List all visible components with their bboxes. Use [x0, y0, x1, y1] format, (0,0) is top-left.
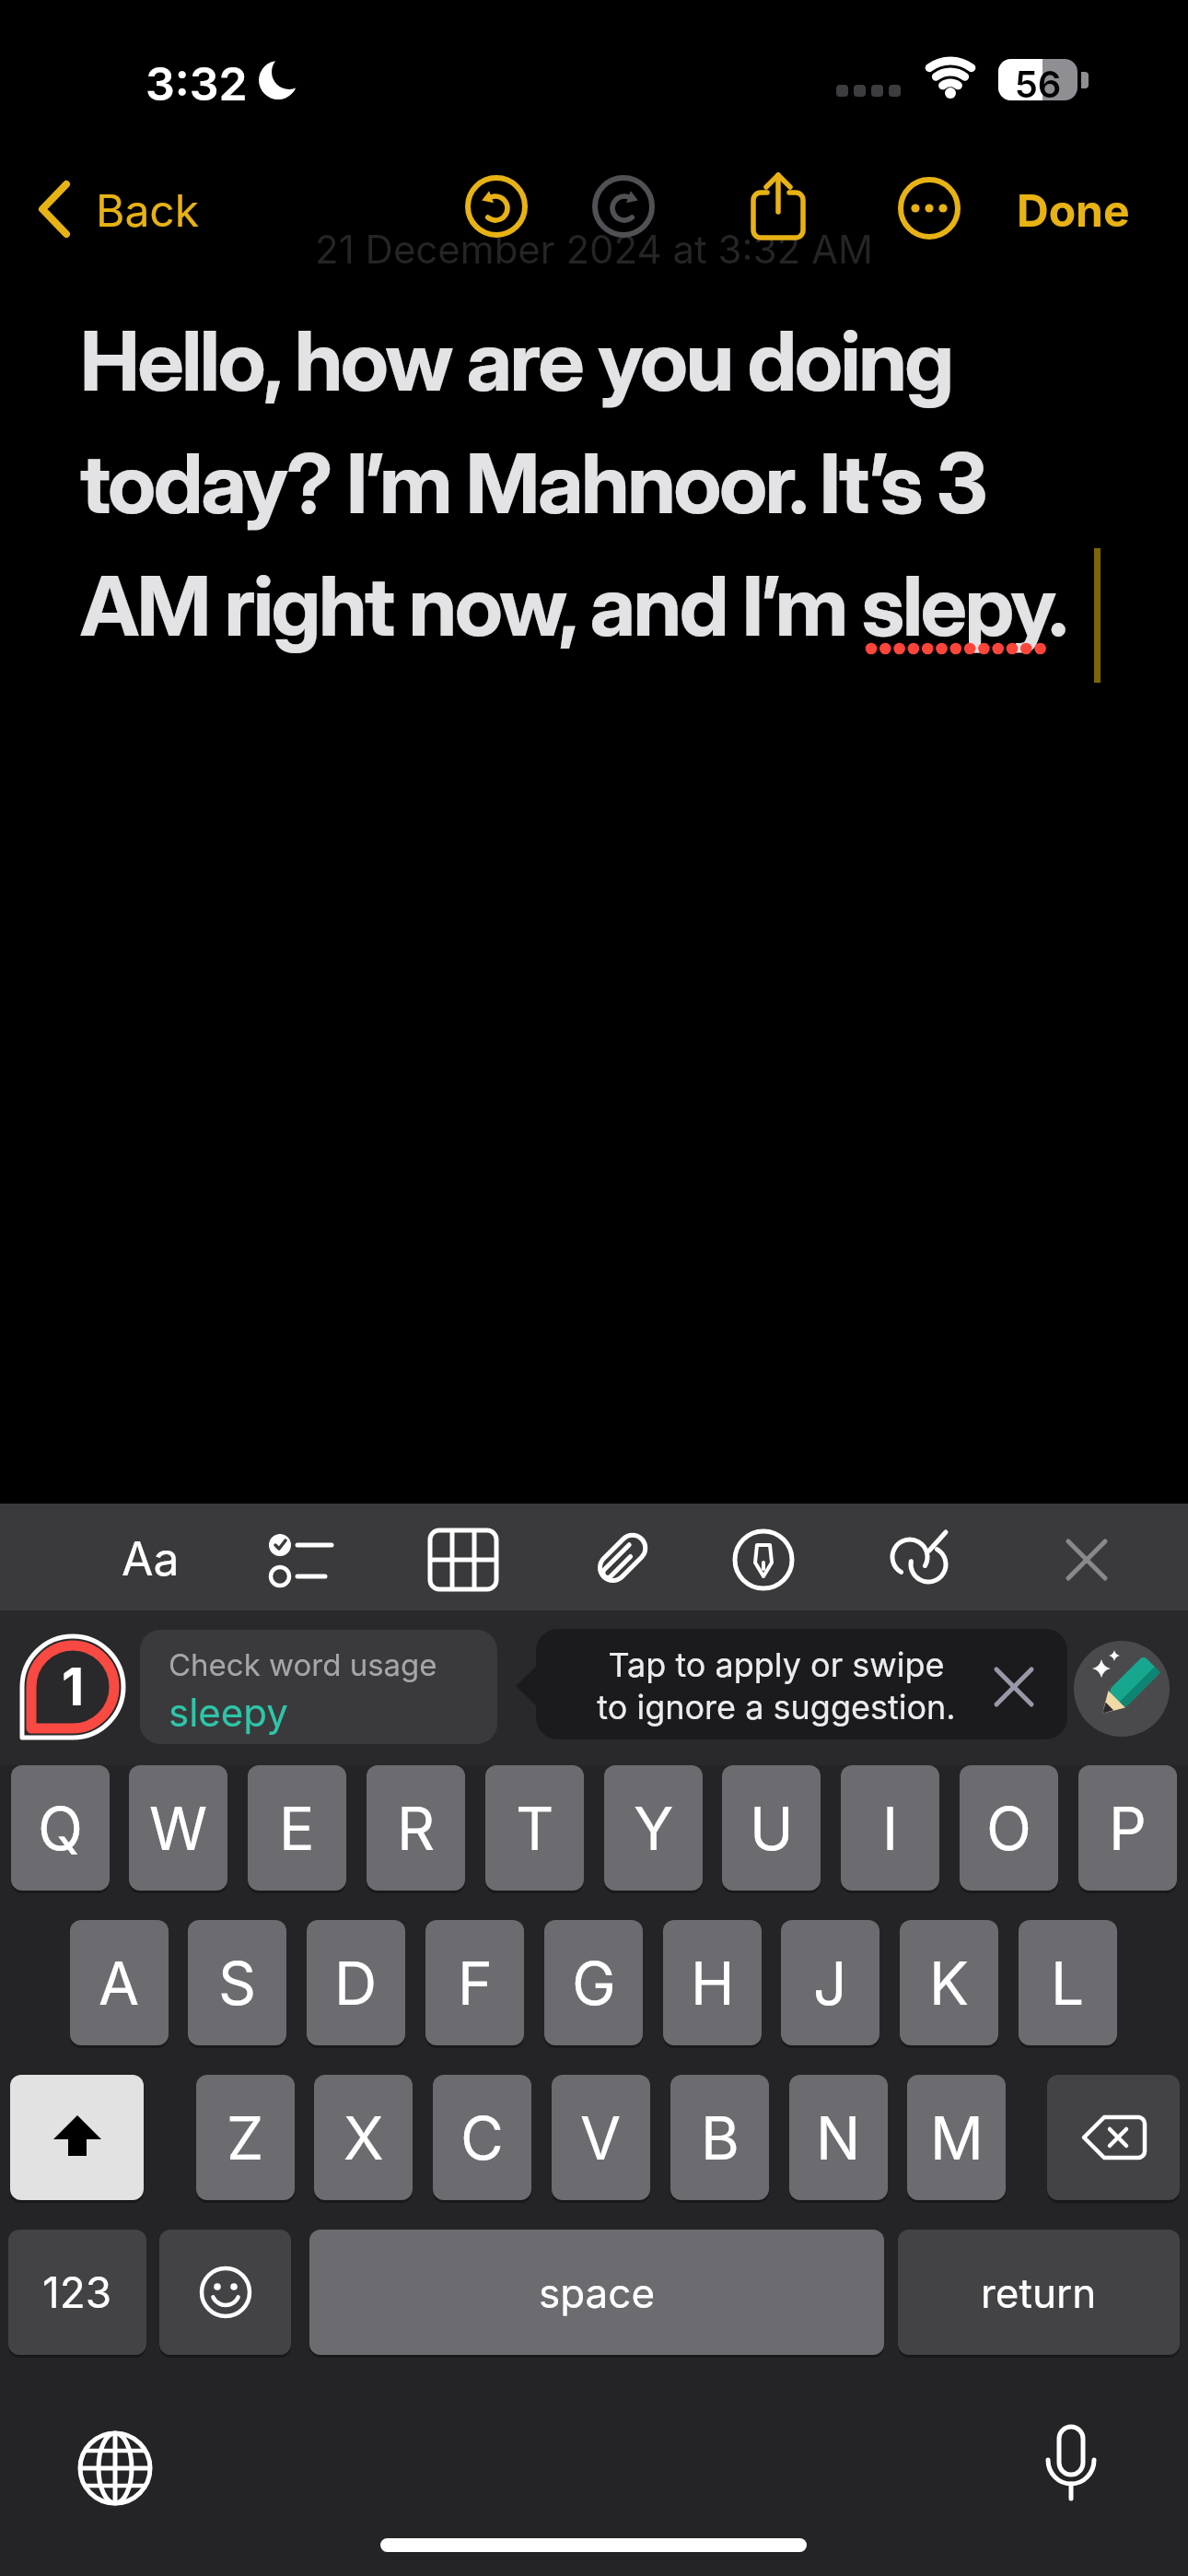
staticText: E — [279, 1793, 315, 1864]
staticText: L — [1051, 1948, 1085, 2019]
staticText: P — [1109, 1793, 1147, 1864]
staticText: Z — [227, 2102, 264, 2173]
button[interactable] — [584, 1523, 658, 1597]
staticText: N — [816, 2102, 861, 2173]
button[interactable]: 1 — [15, 1629, 131, 1745]
staticText: I — [882, 1793, 899, 1864]
staticText: V — [580, 2102, 622, 2173]
staticText: G — [572, 1948, 616, 2019]
button[interactable] — [1061, 1534, 1112, 1586]
staticText: T — [516, 1793, 554, 1864]
button[interactable]: M — [907, 2075, 1006, 2200]
staticText: R — [397, 1793, 436, 1864]
staticText: 56 — [998, 62, 1077, 2576]
button[interactable]: W — [129, 1765, 227, 1891]
button[interactable]: T — [485, 1765, 584, 1891]
button[interactable] — [748, 170, 809, 243]
button[interactable] — [10, 2075, 144, 2200]
button[interactable]: X — [314, 2075, 413, 2200]
button[interactable] — [28, 175, 212, 240]
button[interactable]: E — [248, 1765, 346, 1891]
staticText: S — [218, 1948, 257, 2019]
button[interactable]: G — [544, 1920, 643, 2045]
button[interactable]: B — [670, 2075, 769, 2200]
staticText: Aa — [122, 1531, 180, 1587]
button[interactable] — [897, 176, 961, 240]
button[interactable]: Done — [1008, 175, 1142, 240]
button[interactable]: L — [1019, 1920, 1117, 2045]
staticText: 21 December 2024 at 3:32 AM — [0, 226, 1188, 2576]
button[interactable]: V — [552, 2075, 650, 2200]
staticText: Done — [1017, 183, 1130, 237]
staticText: F — [458, 1948, 493, 2019]
button[interactable]: I — [841, 1765, 939, 1891]
staticText: A — [99, 1948, 140, 2019]
button[interactable]: C — [433, 2075, 531, 2200]
staticText: D — [334, 1948, 378, 2019]
button[interactable] — [1047, 2075, 1180, 2200]
button[interactable]: return — [898, 2230, 1180, 2355]
button[interactable]: Aa — [99, 1520, 201, 1598]
staticText: J — [813, 1948, 847, 2019]
button[interactable] — [1074, 1641, 1170, 1737]
button[interactable]: O — [960, 1765, 1058, 1891]
staticText: K — [929, 1948, 969, 2019]
staticText: H — [691, 1948, 735, 2019]
staticText: Back — [96, 183, 200, 237]
staticText: Check word usage — [169, 1646, 437, 1683]
button[interactable] — [463, 173, 530, 240]
button[interactable] — [732, 1528, 795, 1591]
staticText: return — [981, 2268, 1097, 2317]
button[interactable]: U — [722, 1765, 821, 1891]
button[interactable]: Y — [604, 1765, 703, 1891]
button[interactable] — [426, 1527, 500, 1593]
button[interactable] — [590, 173, 657, 240]
staticText: W — [149, 1793, 208, 1864]
button[interactable]: P — [1078, 1765, 1177, 1891]
staticText: U — [750, 1793, 794, 1864]
staticText: Y — [634, 1793, 674, 1864]
button[interactable]: S — [188, 1920, 286, 2045]
button[interactable]: D — [307, 1920, 405, 2045]
button[interactable] — [76, 2429, 155, 2508]
button[interactable] — [1032, 2423, 1110, 2508]
button[interactable] — [993, 1666, 1035, 1708]
staticText: space — [539, 2268, 656, 2317]
button[interactable]: Z — [196, 2075, 295, 2200]
staticText: X — [344, 2102, 384, 2173]
button[interactable]: 123 — [8, 2230, 146, 2355]
staticText: O — [986, 1793, 1031, 1864]
button[interactable]: A — [70, 1920, 169, 2045]
staticText: B — [701, 2102, 740, 2173]
staticText: Hello, how are you doing today? I’m Mahn… — [80, 310, 1066, 656]
staticText: sleepy — [169, 1689, 288, 1736]
button[interactable]: J — [781, 1920, 879, 2045]
staticText: M — [930, 2102, 984, 2173]
staticText: Tap to apply or swipe to ignore a sugges… — [565, 1645, 988, 1739]
button[interactable] — [266, 1523, 340, 1597]
button[interactable]: R — [367, 1765, 465, 1891]
button[interactable]: K — [900, 1920, 998, 2045]
button[interactable]: Check word usage — [140, 1630, 497, 1744]
staticText: 123 — [42, 2266, 112, 2318]
button[interactable] — [885, 1523, 959, 1597]
button[interactable] — [159, 2230, 291, 2355]
button[interactable]: F — [425, 1920, 524, 2045]
button[interactable]: N — [789, 2075, 888, 2200]
button[interactable]: space — [309, 2230, 884, 2355]
staticText: 3:32 — [146, 56, 248, 111]
button[interactable]: H — [663, 1920, 762, 2045]
staticText: C — [460, 2102, 504, 2173]
staticText: 1 — [62, 1656, 85, 1718]
staticText: Q — [38, 1793, 83, 1864]
button[interactable]: Q — [11, 1765, 110, 1891]
